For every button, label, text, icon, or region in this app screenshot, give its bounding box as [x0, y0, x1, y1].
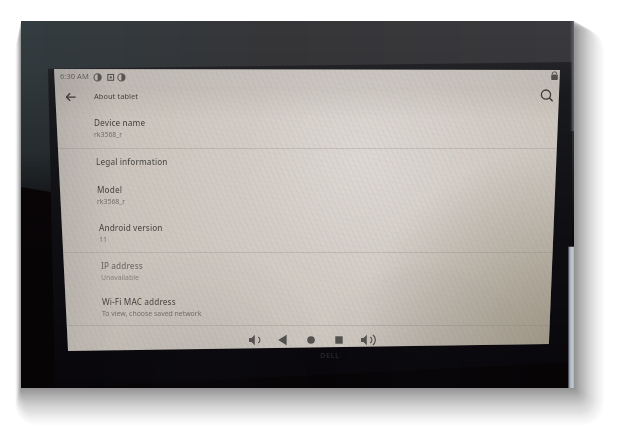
staticText: Legal information: [96, 156, 168, 167]
staticText: DELL: [320, 350, 340, 360]
button[interactable]: IP address: [54, 260, 560, 288]
button[interactable]: Wi-Fi MAC address: [54, 296, 560, 324]
staticText: IP address: [101, 260, 143, 271]
button[interactable]: Device name: [54, 117, 560, 145]
button[interactable]: Search: [539, 88, 556, 105]
staticText: Android version: [99, 222, 163, 233]
staticText: Unavailable: [101, 273, 139, 282]
button[interactable]: Back: [62, 88, 80, 106]
staticText: About tablet: [94, 91, 139, 101]
staticText: Device name: [94, 117, 146, 128]
staticText: 6:30 AM: [60, 71, 89, 81]
staticText: To view, choose saved network: [102, 309, 202, 318]
button[interactable]: Android version: [54, 222, 560, 250]
staticText: Model: [97, 184, 123, 195]
button[interactable]: Home: [304, 333, 318, 347]
button[interactable]: Recents: [332, 333, 346, 347]
staticText: rk3568_r: [94, 130, 123, 139]
staticText: 11: [99, 235, 107, 244]
staticText: rk3568_r: [97, 197, 126, 206]
button[interactable]: Volume down: [248, 333, 262, 347]
button[interactable]: Legal information: [54, 156, 560, 176]
staticText: Wi-Fi MAC address: [102, 296, 176, 307]
button[interactable]: Model: [54, 184, 560, 212]
button[interactable]: Back: [276, 333, 290, 347]
button[interactable]: Volume up: [360, 333, 374, 347]
